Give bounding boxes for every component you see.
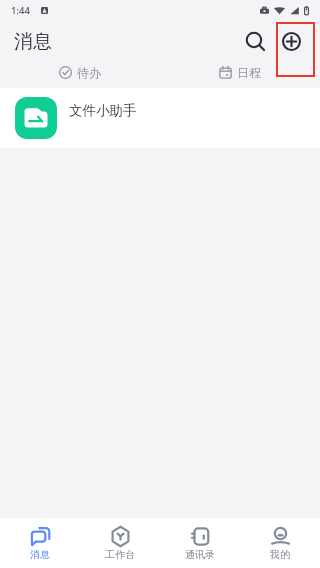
staticText: 文件小助手 (69, 102, 137, 119)
staticText: 消息 (14, 30, 52, 54)
staticText: 通讯录 (185, 548, 215, 561)
staticText: 1:44 (11, 4, 30, 17)
staticText: 待办 (77, 65, 101, 80)
staticText: 日程 (237, 65, 261, 80)
button[interactable]: Search (236, 22, 274, 60)
button[interactable]: 日程 (160, 58, 320, 86)
staticText: 消息 (30, 548, 50, 561)
button[interactable]: 我的 (240, 518, 320, 568)
button[interactable]: 待办 (0, 58, 160, 86)
staticText: 工作台 (105, 548, 135, 561)
button[interactable]: 文件小助手 (0, 88, 320, 148)
button[interactable]: 通讯录 (160, 518, 240, 568)
button[interactable]: Add (274, 22, 313, 60)
button[interactable]: 消息 (0, 518, 80, 568)
staticText: 我的 (270, 548, 290, 561)
button[interactable]: 工作台 (80, 518, 160, 568)
